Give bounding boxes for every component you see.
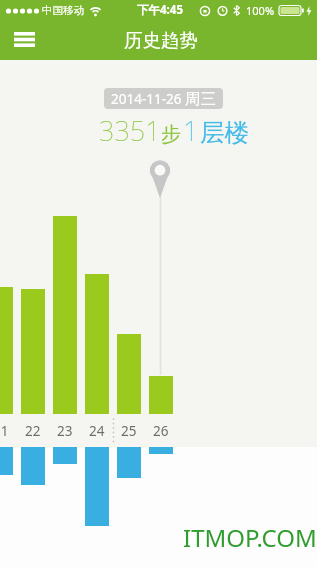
staticText: 层楼 bbox=[200, 117, 249, 148]
staticText: 21 bbox=[0, 422, 9, 440]
staticText: 2014-11-26 bbox=[111, 90, 185, 108]
staticText: 周三 bbox=[185, 89, 216, 109]
button[interactable] bbox=[8, 25, 42, 55]
staticText: 100% bbox=[246, 3, 275, 18]
staticText: 1 bbox=[183, 112, 199, 148]
staticText: 24 bbox=[89, 422, 105, 440]
staticText: 历史趋势 bbox=[124, 29, 198, 52]
staticText: 下午4:45 bbox=[137, 2, 183, 18]
staticText: 中国移动 bbox=[42, 4, 84, 17]
staticText: 25 bbox=[121, 422, 137, 440]
staticText: 23 bbox=[57, 422, 73, 440]
staticText: 3351 bbox=[99, 112, 161, 148]
button[interactable]: 2014-11-26 bbox=[104, 88, 223, 109]
staticText: 22 bbox=[25, 422, 41, 440]
staticText: 26 bbox=[153, 422, 169, 440]
staticText: ITMOP.COM bbox=[183, 521, 317, 554]
staticText: 步 bbox=[161, 122, 181, 147]
